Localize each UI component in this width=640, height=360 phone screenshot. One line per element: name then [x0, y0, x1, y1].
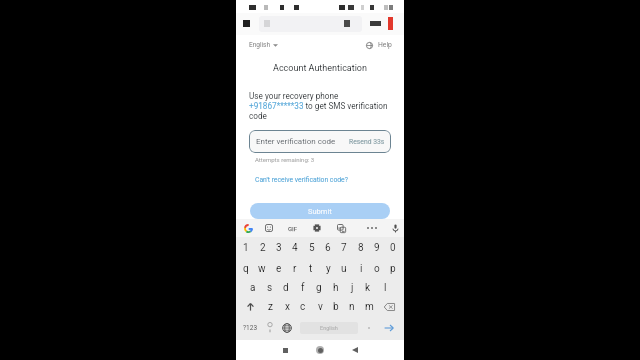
- button[interactable]: l: [377, 278, 393, 298]
- button[interactable]: Comma: [262, 318, 278, 338]
- button[interactable]: 3: [271, 238, 287, 258]
- staticText: b: [333, 301, 339, 313]
- staticText: h: [333, 282, 339, 294]
- button[interactable]: Change language: [279, 318, 295, 338]
- button[interactable]: s: [262, 278, 278, 298]
- button[interactable]: m: [361, 297, 377, 317]
- staticText: 8: [358, 242, 364, 254]
- staticText: 7: [341, 242, 347, 254]
- button[interactable]: c: [295, 297, 311, 317]
- staticText: GIF: [288, 225, 298, 232]
- button[interactable]: Voice input: [388, 221, 402, 235]
- button[interactable]: 8: [353, 238, 369, 258]
- button[interactable]: Settings: [310, 221, 324, 235]
- button[interactable]: j: [344, 278, 360, 298]
- button[interactable]: 1: [238, 238, 254, 258]
- staticText: Attempts remaining: 3: [255, 156, 315, 163]
- staticText: i: [360, 263, 363, 275]
- button[interactable]: 9: [369, 238, 385, 258]
- staticText: Account Authentication: [236, 63, 404, 74]
- button[interactable]: d: [278, 278, 294, 298]
- staticText: j: [351, 282, 354, 294]
- button[interactable]: Back: [346, 341, 363, 359]
- button[interactable]: GIF: [283, 221, 303, 235]
- staticText: g: [316, 282, 322, 294]
- button[interactable]: f: [295, 278, 311, 298]
- staticText: y: [326, 263, 331, 275]
- button[interactable]: Enter verification code: [249, 130, 391, 153]
- button[interactable]: Period: [361, 318, 377, 338]
- button[interactable]: 6: [320, 238, 336, 258]
- button[interactable]: Recent apps: [277, 341, 294, 359]
- staticText: 6: [325, 242, 331, 254]
- staticText: ?123: [243, 324, 258, 332]
- staticText: z: [268, 301, 273, 313]
- button[interactable]: 2: [255, 238, 271, 258]
- button[interactable]: i: [353, 259, 369, 279]
- button[interactable]: k: [360, 278, 376, 298]
- button[interactable]: More options: [364, 221, 380, 235]
- button[interactable]: t: [303, 259, 319, 279]
- staticText: Resend 33s: [349, 138, 385, 146]
- staticText: 4: [292, 242, 298, 254]
- staticText: 2: [260, 242, 266, 254]
- button[interactable]: p: [385, 259, 401, 279]
- staticText: m: [365, 301, 374, 313]
- button[interactable]: h: [328, 278, 344, 298]
- button[interactable]: Google: [241, 221, 255, 235]
- button[interactable]: ?123: [240, 318, 260, 338]
- button[interactable]: g: [311, 278, 327, 298]
- button[interactable]: Can't receive verification code?: [255, 176, 348, 184]
- button[interactable]: Address bar: [259, 16, 362, 32]
- button[interactable]: v: [312, 297, 328, 317]
- staticText: p: [390, 263, 396, 275]
- staticText: n: [349, 301, 355, 313]
- button[interactable]: b: [328, 297, 344, 317]
- staticText: v: [318, 301, 323, 313]
- staticText: e: [276, 263, 282, 275]
- button[interactable]: 7: [336, 238, 352, 258]
- button[interactable]: Shift: [242, 297, 258, 317]
- button[interactable]: w: [254, 259, 270, 279]
- button[interactable]: Enter: [379, 318, 399, 338]
- staticText: c: [300, 301, 306, 313]
- staticText: f: [301, 282, 305, 294]
- staticText: s: [267, 282, 273, 294]
- button[interactable]: English: [300, 322, 358, 334]
- button[interactable]: Translate: [334, 221, 348, 235]
- button[interactable]: Backspace: [380, 297, 398, 317]
- button[interactable]: x: [279, 297, 295, 317]
- staticText: o: [374, 263, 380, 275]
- button[interactable]: z: [262, 297, 278, 317]
- button[interactable]: 0: [385, 238, 401, 258]
- button[interactable]: English: [249, 41, 278, 49]
- staticText: q: [243, 263, 249, 275]
- button[interactable]: Stickers: [262, 221, 276, 235]
- button[interactable]: a: [245, 278, 261, 298]
- button[interactable]: 4: [287, 238, 303, 258]
- staticText: 1: [243, 242, 249, 254]
- button[interactable]: q: [238, 259, 254, 279]
- staticText: Enter verification code: [256, 137, 336, 146]
- staticText: 0: [390, 242, 396, 254]
- staticText: Use your recovery phone +91867*****33 to…: [249, 91, 391, 121]
- button[interactable]: Submit: [250, 203, 390, 219]
- button[interactable]: Home: [311, 341, 328, 359]
- staticText: Submit: [308, 207, 332, 216]
- staticText: r: [293, 263, 297, 275]
- button[interactable]: u: [336, 259, 352, 279]
- button[interactable]: y: [320, 259, 336, 279]
- button[interactable]: n: [344, 297, 360, 317]
- staticText: l: [384, 282, 387, 294]
- button[interactable]: r: [287, 259, 303, 279]
- button[interactable]: o: [369, 259, 385, 279]
- button[interactable]: 5: [304, 238, 320, 258]
- button[interactable]: e: [271, 259, 287, 279]
- staticText: d: [283, 282, 289, 294]
- button[interactable]: Help: [366, 41, 392, 49]
- staticText: k: [365, 282, 371, 294]
- staticText: 9: [374, 242, 380, 254]
